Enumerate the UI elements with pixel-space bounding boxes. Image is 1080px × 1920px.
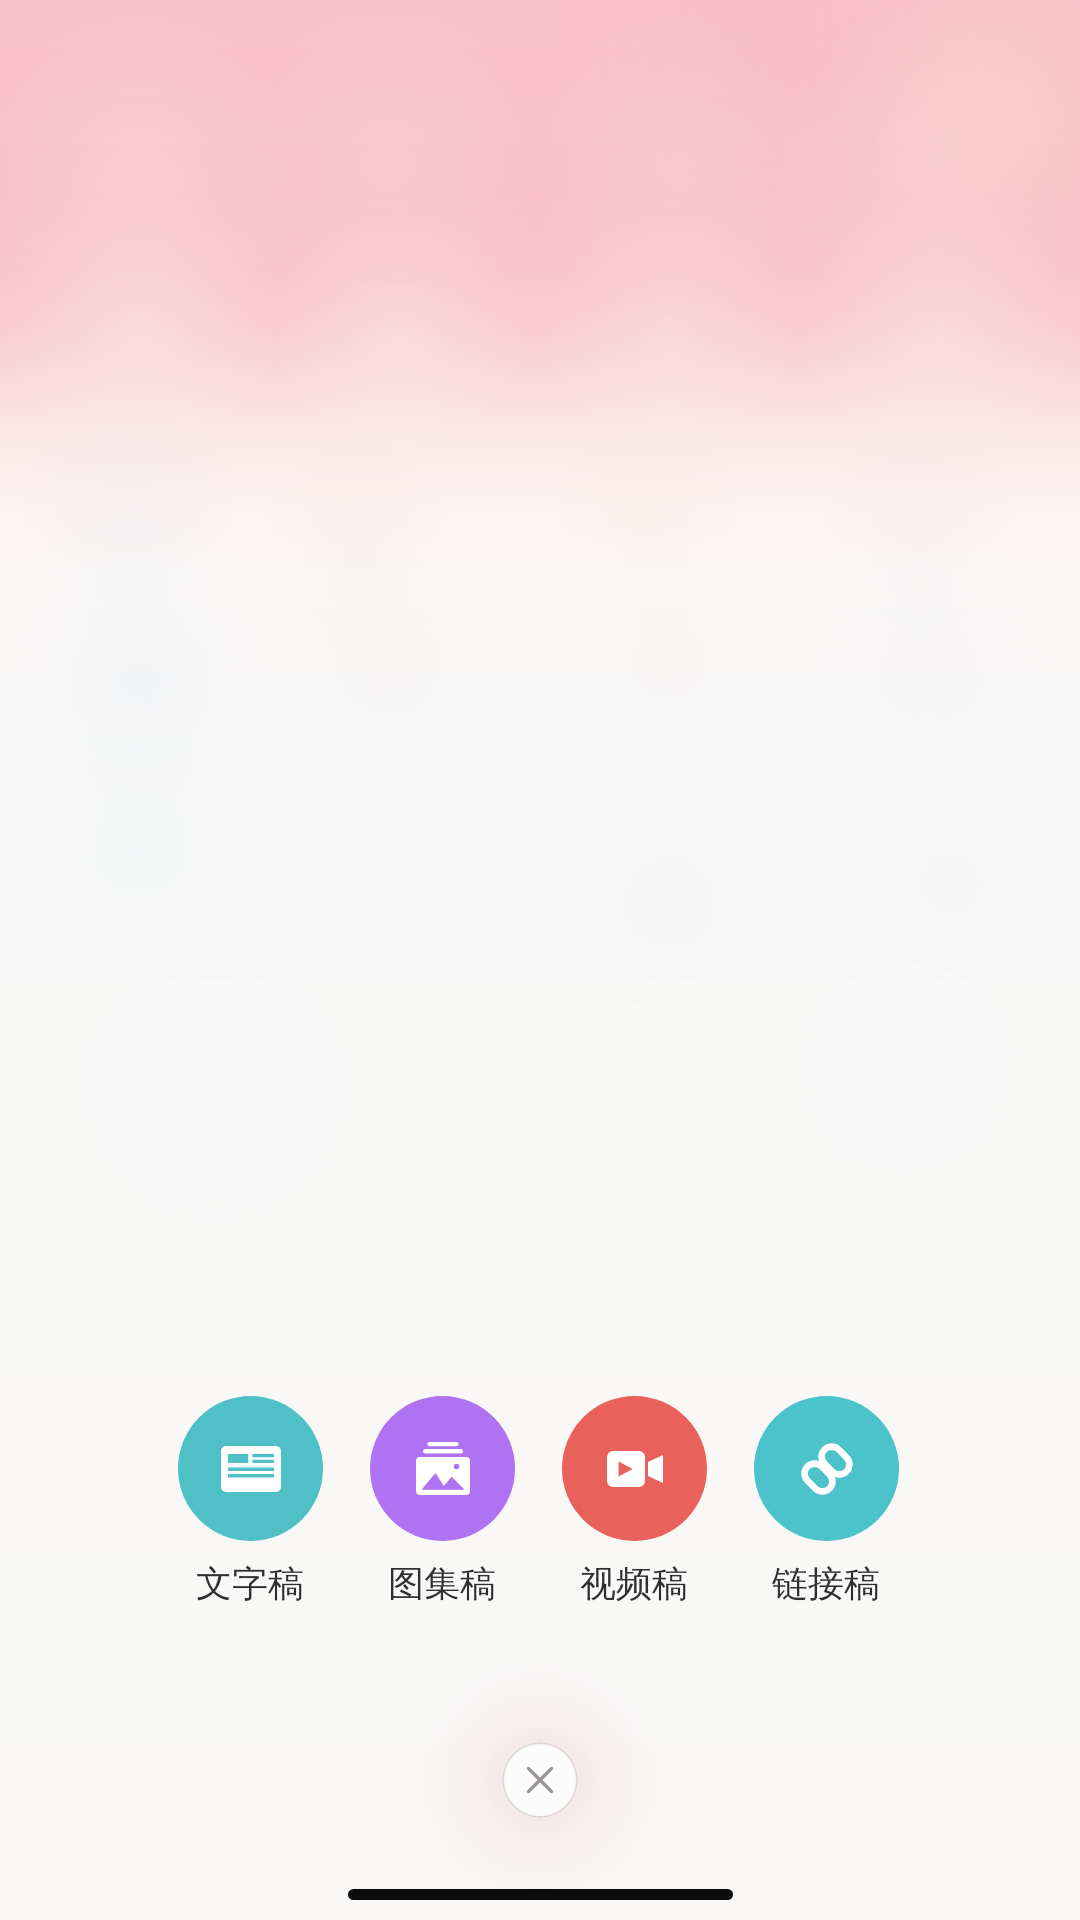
button[interactable]: 图集稿 — [346, 1396, 538, 1606]
staticText: 视频稿 — [580, 1561, 688, 1606]
staticText: 链接稿 — [772, 1561, 880, 1606]
button[interactable]: 视频稿 — [538, 1396, 730, 1606]
staticText: 图集稿 — [388, 1561, 496, 1606]
staticText: 文字稿 — [196, 1561, 304, 1606]
button[interactable]: 链接稿 — [730, 1396, 922, 1606]
button[interactable]: Close — [502, 1742, 578, 1818]
button[interactable]: 文字稿 — [154, 1396, 346, 1606]
